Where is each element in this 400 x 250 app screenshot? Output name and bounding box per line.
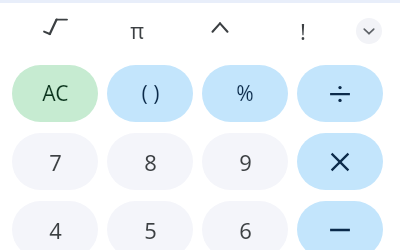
button[interactable]: ! (281, 9, 325, 53)
button[interactable]: AC (12, 65, 98, 122)
button[interactable]: 6 (202, 201, 288, 250)
button[interactable]: 5 (107, 201, 193, 250)
staticText: 4 (49, 215, 62, 245)
button[interactable]: π (115, 9, 159, 53)
staticText: π (130, 17, 144, 46)
staticText: ( ) (141, 79, 160, 108)
button[interactable]: 8 (107, 133, 193, 190)
staticText: 8 (144, 147, 157, 177)
button[interactable]: ( ) (107, 65, 193, 122)
button[interactable]: 7 (12, 133, 98, 190)
button[interactable]: 4 (12, 201, 98, 250)
button[interactable]: Square root (33, 9, 77, 53)
button[interactable]: % (202, 65, 288, 122)
button[interactable]: Divide (297, 65, 383, 122)
button[interactable]: Power (198, 8, 242, 52)
button[interactable]: More functions (356, 18, 382, 44)
staticText: 5 (144, 215, 157, 245)
staticText: AC (42, 79, 69, 108)
staticText: ! (300, 16, 306, 46)
button[interactable]: Subtract (297, 201, 383, 250)
staticText: 9 (239, 147, 252, 177)
button[interactable]: Multiply (297, 133, 383, 190)
staticText: 6 (239, 215, 252, 245)
button[interactable]: 9 (202, 133, 288, 190)
staticText: 7 (49, 147, 62, 177)
staticText: % (236, 79, 254, 108)
